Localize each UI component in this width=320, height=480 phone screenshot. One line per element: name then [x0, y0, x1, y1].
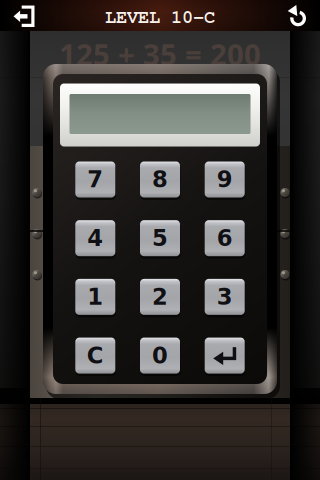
- button[interactable]: 8: [140, 161, 180, 197]
- button[interactable]: C: [75, 338, 115, 374]
- staticText: 7: [87, 166, 103, 193]
- staticText: 8: [152, 166, 168, 193]
- staticText: 4: [87, 225, 103, 251]
- button[interactable]: Restart level: [272, 0, 320, 31]
- staticText: LEVEL 10-C: [105, 3, 215, 28]
- staticText: 1: [87, 284, 103, 310]
- button[interactable]: 6: [205, 220, 245, 256]
- staticText: C: [87, 342, 104, 369]
- button[interactable]: 3: [205, 279, 245, 315]
- staticText: 9: [217, 166, 233, 193]
- button[interactable]: 2: [140, 279, 180, 315]
- staticText: 6: [217, 225, 233, 251]
- button[interactable]: 4: [75, 220, 115, 256]
- button[interactable]: 9: [205, 161, 245, 197]
- button[interactable]: 5: [140, 220, 180, 256]
- staticText: 2: [152, 284, 168, 310]
- staticText: 0: [152, 342, 168, 369]
- staticText: 5: [152, 225, 168, 251]
- button[interactable]: Enter: [205, 338, 245, 374]
- button[interactable]: 0: [140, 338, 180, 374]
- staticText: 3: [217, 284, 233, 310]
- staticText: 125 + 35 = 200: [59, 34, 261, 74]
- button[interactable]: Exit level: [0, 0, 48, 31]
- button[interactable]: 1: [75, 279, 115, 315]
- button[interactable]: 7: [75, 161, 115, 197]
